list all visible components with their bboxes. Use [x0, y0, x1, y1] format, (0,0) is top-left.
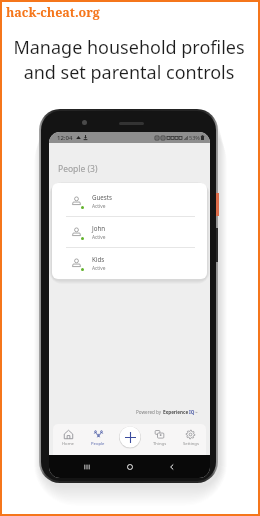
button[interactable]: John — [52, 217, 207, 247]
staticText: Manage household profiles and set parent… — [0, 35, 258, 85]
staticText: Experience — [163, 409, 189, 415]
staticText: Kids — [92, 255, 105, 263]
button[interactable]: Settings — [175, 424, 206, 455]
staticText: Guests — [92, 193, 112, 201]
staticText: People (3) — [58, 163, 98, 175]
staticText: Things — [153, 441, 167, 447]
staticText: 12:04 — [57, 134, 73, 142]
button[interactable]: Things — [144, 424, 175, 455]
staticText: Active — [92, 203, 106, 210]
staticText: IQ — [189, 409, 195, 415]
staticText: hack-cheat.org — [6, 4, 100, 21]
button[interactable]: Add — [119, 426, 141, 448]
button[interactable]: Home — [53, 424, 83, 455]
staticText: ™ — [195, 411, 198, 415]
staticText: People — [91, 441, 105, 447]
staticText: 53% — [189, 134, 200, 141]
staticText: John — [92, 224, 106, 232]
staticText: Home — [62, 441, 74, 447]
staticText: Active — [92, 265, 106, 272]
staticText: Active — [92, 234, 106, 241]
staticText: Powered by — [136, 409, 163, 415]
button[interactable]: Guests — [52, 186, 207, 216]
button[interactable]: Kids — [52, 248, 207, 278]
staticText: Settings — [183, 441, 199, 447]
button[interactable]: People — [83, 424, 113, 455]
